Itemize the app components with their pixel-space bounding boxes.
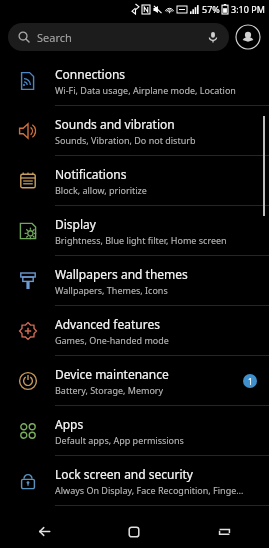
staticText: Battery, Storage, Memory: [55, 384, 164, 396]
staticText: Sounds, Vibration, Do not disturb: [55, 134, 196, 146]
button[interactable]: Sounds and vibration: [0, 106, 269, 155]
button[interactable]: Device maintenance: [0, 356, 269, 405]
staticText: Brightness, Blue light filter, Home scre…: [55, 234, 227, 246]
staticText: Display: [55, 216, 96, 232]
button[interactable]: Account: [235, 24, 261, 50]
staticText: Device maintenance: [55, 366, 169, 382]
button[interactable]: Advanced features: [0, 306, 269, 355]
button[interactable]: Home: [89, 515, 179, 548]
staticText: Wallpapers and themes: [55, 266, 188, 282]
staticText: Sounds and vibration: [55, 116, 175, 132]
other: Voice search: [207, 31, 219, 43]
button[interactable]: Connections: [0, 56, 269, 105]
staticText: Wi-Fi, Data usage, Airplane mode, Locati…: [55, 84, 236, 96]
staticText: Connections: [55, 66, 126, 82]
staticText: Wallpapers, Themes, Icons: [55, 284, 168, 296]
button[interactable]: Recents: [179, 515, 269, 548]
staticText: Games, One-handed mode: [55, 334, 169, 346]
staticText: 1: [248, 376, 253, 387]
staticText: Block, allow, prioritize: [55, 184, 147, 196]
button[interactable]: Display: [0, 206, 269, 255]
button[interactable]: Back: [0, 515, 89, 548]
button[interactable]: Apps: [0, 406, 269, 455]
staticText: Always On Display, Face Recognition, Fin…: [55, 484, 244, 496]
button[interactable]: Search: [8, 23, 229, 51]
staticText: Lock screen and security: [55, 466, 193, 482]
staticText: Default apps, App permissions: [55, 434, 184, 446]
staticText: Apps: [55, 416, 84, 432]
button[interactable]: Lock screen and security: [0, 456, 269, 505]
button[interactable]: Notifications: [0, 156, 269, 205]
staticText: Notifications: [55, 166, 127, 182]
staticText: Advanced features: [55, 316, 160, 332]
staticText: 57%: [202, 3, 220, 15]
staticText: Search: [37, 30, 72, 45]
staticText: 3:10 PM: [231, 3, 265, 15]
button[interactable]: Wallpapers and themes: [0, 256, 269, 305]
